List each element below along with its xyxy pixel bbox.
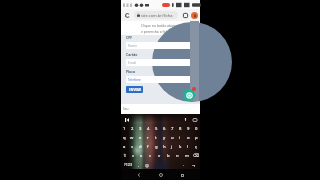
staticText: 4 (147, 126, 150, 132)
staticText: q (123, 135, 126, 141)
staticText: v (158, 153, 161, 159)
button[interactable]: Clipboard (124, 117, 129, 122)
button[interactable]: Back (135, 171, 143, 179)
staticText: z (132, 153, 134, 159)
button[interactable]: a (121, 142, 128, 151)
button[interactable]: e (136, 133, 144, 142)
button[interactable]: v (155, 151, 164, 160)
staticText: j (171, 144, 173, 150)
button[interactable]: l (184, 142, 192, 151)
button[interactable]: 7 (168, 124, 176, 133)
staticText: Cartão (126, 52, 138, 57)
staticText: ⌫ (193, 153, 199, 158)
button[interactable]: i (176, 133, 184, 142)
button[interactable]: 9 (184, 124, 192, 133)
staticText: Email (128, 61, 137, 65)
staticText: b (167, 153, 170, 159)
button[interactable]: 5 (152, 124, 160, 133)
button[interactable]: Recents (178, 171, 186, 179)
staticText: k (179, 144, 182, 150)
staticText: o (187, 135, 190, 141)
button[interactable]: 8 (176, 124, 184, 133)
staticText: Nome (128, 44, 138, 48)
staticText: s (131, 144, 134, 150)
button[interactable]: ☺ (143, 160, 151, 169)
button[interactable]: p (192, 133, 200, 142)
button[interactable]: , (135, 160, 143, 169)
button[interactable]: z (129, 151, 137, 160)
staticText: . (183, 162, 185, 167)
staticText: f (147, 144, 149, 150)
button[interactable]: w (128, 133, 136, 142)
button[interactable]: q (121, 133, 128, 142)
button[interactable]: 6 (160, 124, 168, 133)
staticText: Telefone (128, 78, 141, 82)
button[interactable]: j (168, 142, 176, 151)
button[interactable]: . (180, 160, 188, 169)
staticText: Seu (123, 107, 129, 111)
button[interactable]: t (152, 133, 160, 142)
staticText: 2 (131, 126, 134, 132)
button[interactable]: ?123 (121, 160, 135, 169)
button[interactable]: u (168, 133, 176, 142)
staticText: n (176, 153, 179, 159)
staticText: CPF (126, 35, 133, 40)
staticText: y (163, 135, 166, 141)
button[interactable]: Nome (126, 42, 190, 49)
staticText: 7 (171, 126, 174, 132)
button[interactable]: Voice input (183, 117, 188, 122)
button[interactable]: n (173, 151, 182, 160)
button[interactable]: ç (192, 142, 200, 151)
staticText: p (195, 135, 198, 141)
button[interactable]: k (176, 142, 184, 151)
staticText: w (130, 135, 134, 141)
button[interactable]: 3 (136, 124, 144, 133)
button[interactable]: ENVIAR (126, 86, 143, 93)
button[interactable]: h (160, 142, 168, 151)
button[interactable]: 2 (128, 124, 136, 133)
button[interactable]: Email (126, 59, 190, 66)
staticText: 5 (155, 126, 158, 132)
button[interactable]: r (144, 133, 152, 142)
button[interactable]: b (164, 151, 173, 160)
staticText: 9 (187, 126, 190, 132)
button[interactable]: y (160, 133, 168, 142)
button[interactable]: ⌫ (191, 151, 200, 160)
staticText: i (179, 135, 181, 141)
button[interactable]: o (184, 133, 192, 142)
button[interactable]: s (128, 142, 136, 151)
staticText: , (138, 162, 140, 167)
button[interactable]: ⇧ (121, 151, 129, 160)
button[interactable]: m (182, 151, 191, 160)
button[interactable]: 1 (121, 124, 128, 133)
staticText: t (155, 135, 157, 141)
button[interactable]: Account (191, 12, 198, 19)
staticText: d (139, 144, 142, 150)
staticText: site.com.br/ficha (141, 13, 173, 18)
button[interactable]: f (144, 142, 152, 151)
button[interactable]: g (152, 142, 160, 151)
button[interactable]: x (137, 151, 146, 160)
staticText: → (192, 163, 196, 167)
button[interactable]: Keyboard settings (192, 117, 197, 122)
staticText: h (163, 144, 166, 150)
button[interactable]: 4 (144, 124, 152, 133)
button[interactable]: Telefone (126, 76, 190, 83)
staticText: ENVIAR (129, 88, 141, 92)
button[interactable]: site.com.br/ficha (134, 11, 178, 19)
staticText: l (187, 144, 189, 150)
staticText: a (123, 144, 126, 150)
button[interactable]: → (188, 160, 200, 169)
button[interactable]: d (136, 142, 144, 151)
staticText: Placa (126, 69, 135, 74)
button[interactable]: Tabs (181, 11, 189, 19)
button[interactable]: WhatsApp (183, 89, 195, 101)
staticText: u (171, 135, 174, 141)
button[interactable]: 0 (192, 124, 200, 133)
button[interactable]: Reload (124, 12, 131, 19)
button[interactable]: Home (157, 171, 165, 179)
staticText: g (155, 144, 158, 150)
button[interactable]: Space (151, 160, 180, 169)
staticText: 8 (179, 126, 182, 132)
button[interactable]: c (146, 151, 155, 160)
